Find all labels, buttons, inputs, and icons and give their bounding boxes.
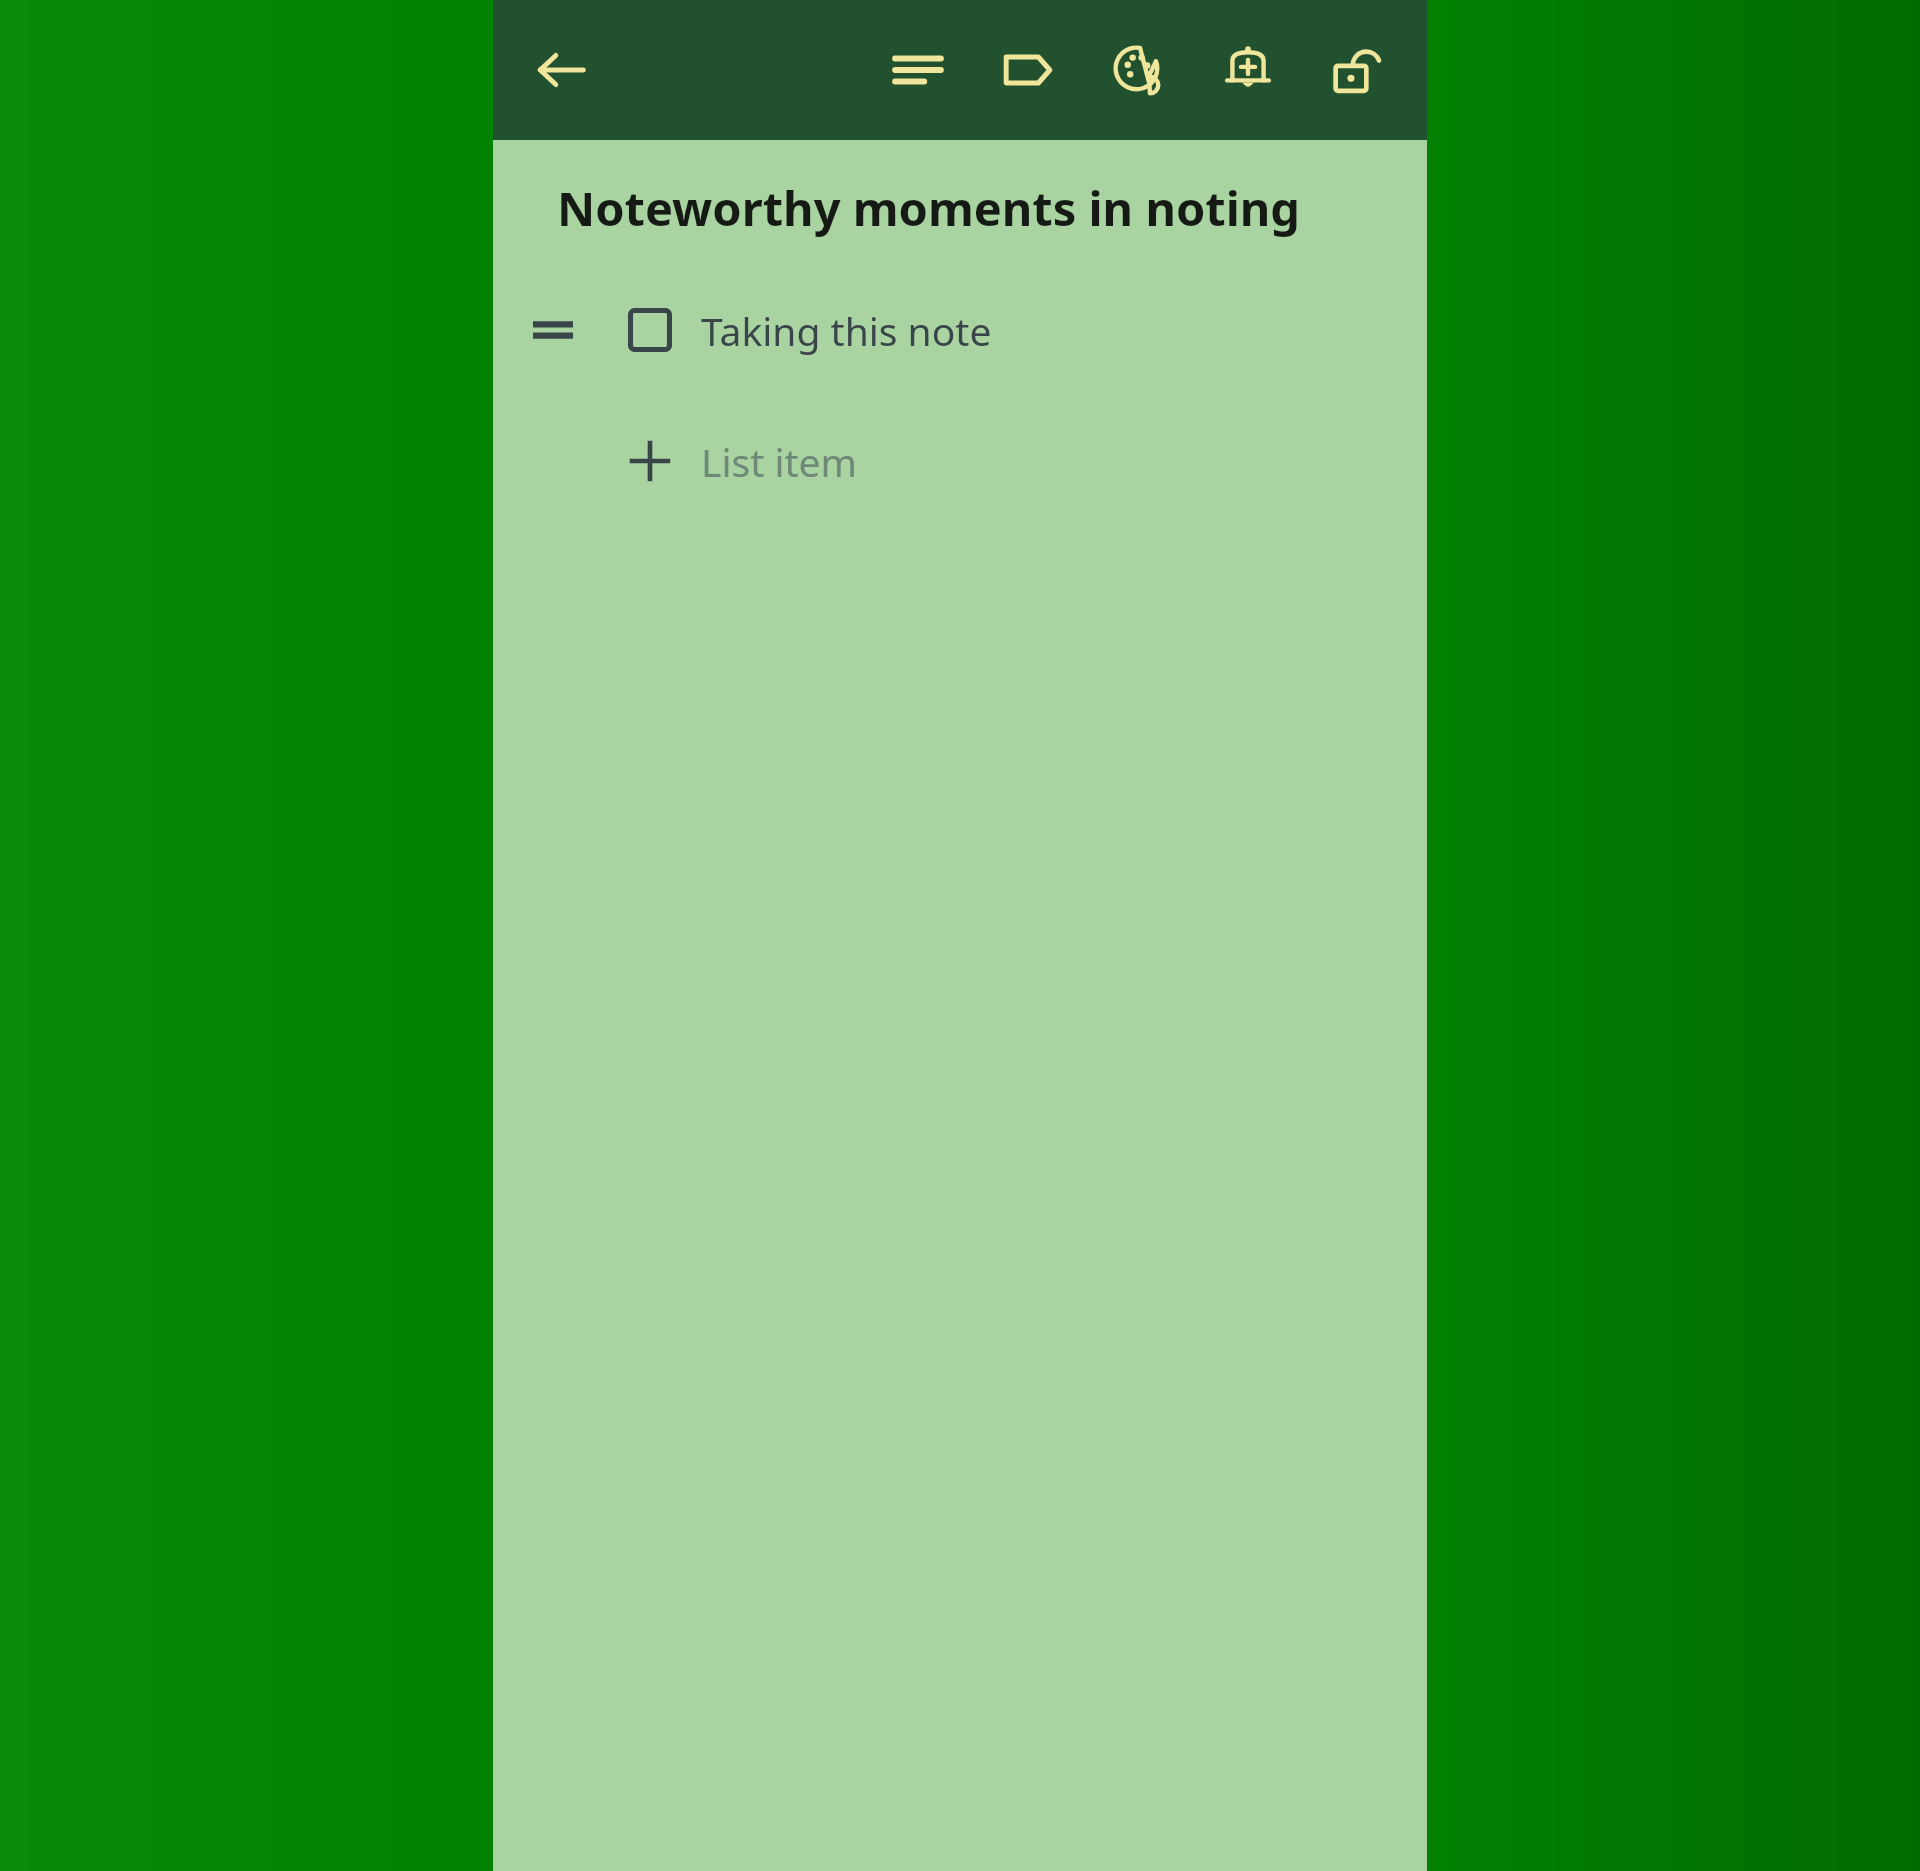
button[interactable]: List item bbox=[493, 418, 1427, 504]
button[interactable]: Back bbox=[513, 22, 609, 118]
staticText: List item bbox=[701, 435, 858, 488]
button[interactable]: Mark as done bbox=[613, 293, 687, 367]
button[interactable]: Add reminder bbox=[1193, 15, 1303, 125]
staticText: Noteworthy moments in noting bbox=[557, 176, 1301, 240]
button[interactable]: Unlock note bbox=[1303, 15, 1413, 125]
button[interactable]: Formatting bbox=[863, 15, 973, 125]
button[interactable]: Reorder item bbox=[493, 286, 1427, 374]
staticText: Taking this note bbox=[701, 304, 992, 357]
button[interactable]: Label bbox=[973, 15, 1083, 125]
button[interactable]: Reorder item bbox=[515, 292, 591, 368]
button[interactable]: Change color bbox=[1083, 15, 1193, 125]
